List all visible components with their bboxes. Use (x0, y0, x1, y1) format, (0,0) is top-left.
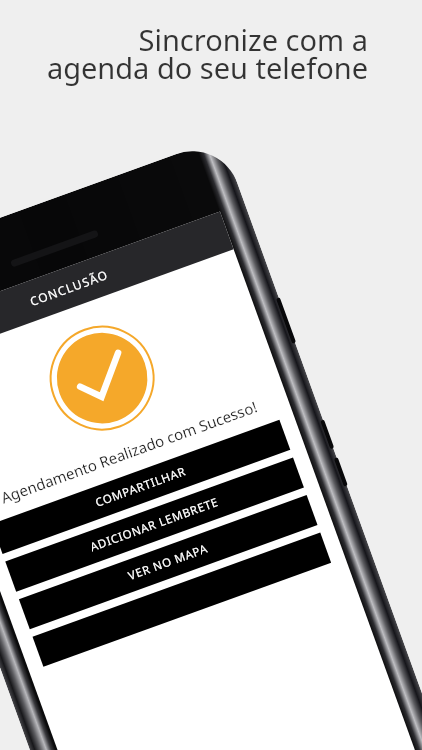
button[interactable]: CONCLUSÃO (0, 212, 234, 364)
staticText: Sincronize com a agenda do seu telefone (30, 20, 368, 87)
button[interactable]: ADICIONAR LEMBRETE (5, 457, 304, 592)
staticText: ADICIONAR LEMBRETE (88, 494, 221, 555)
button[interactable]: COMPARTILHAR (0, 420, 290, 554)
staticText: VER NO MAPA (126, 540, 210, 584)
staticText: CONCLUSÃO (27, 266, 111, 309)
staticText: COMPARTILHAR (93, 463, 189, 511)
button[interactable]: VER NO MAPA (19, 495, 317, 629)
button[interactable] (32, 533, 331, 667)
staticText: Agendamento Realizado com Sucesso! (0, 396, 260, 507)
